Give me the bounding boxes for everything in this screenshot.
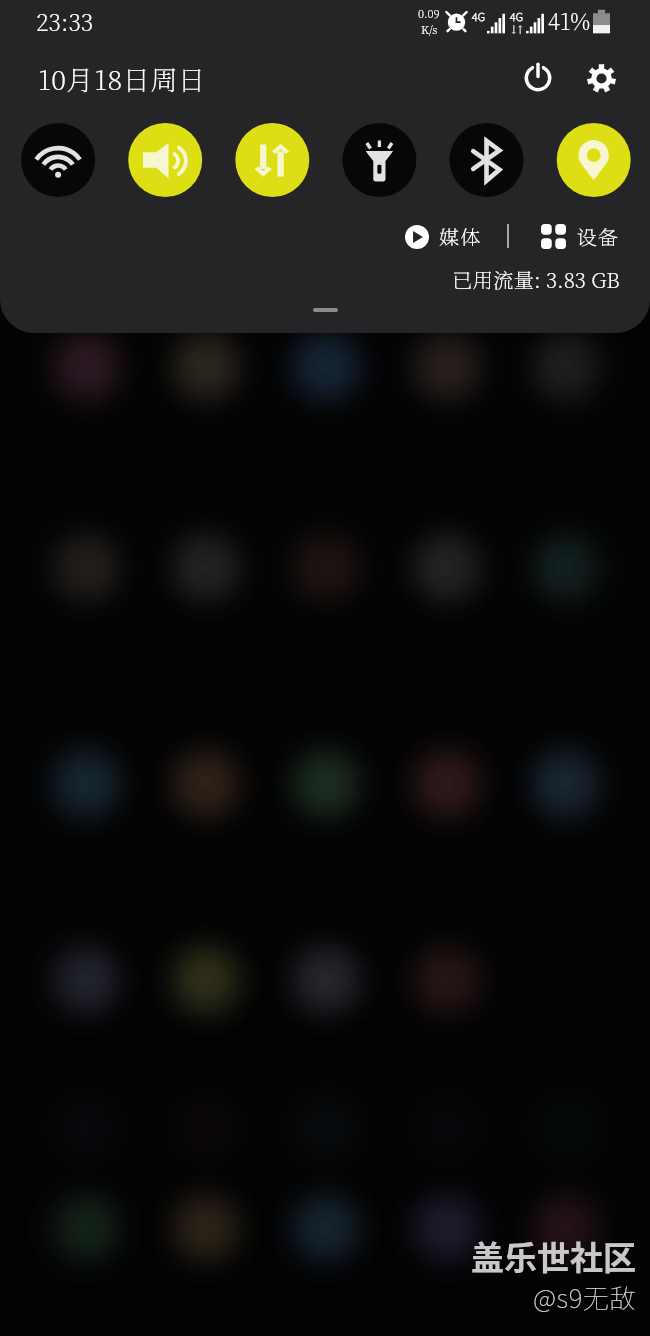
staticText: 10月18日周日	[38, 59, 206, 98]
staticText: 4G	[472, 8, 486, 24]
staticText: 41%	[548, 5, 591, 37]
button[interactable]: 设备	[541, 218, 619, 255]
staticText: 设备	[577, 222, 619, 251]
staticText: 0.09	[418, 5, 440, 21]
button[interactable]: Bluetooth	[428, 114, 535, 206]
staticText: 媒体	[439, 222, 481, 251]
button[interactable]: Flashlight	[321, 114, 428, 206]
staticText: K/s	[421, 21, 438, 37]
staticText: 已用流量: 3.83 GB	[452, 264, 620, 293]
button[interactable]: Location	[535, 114, 642, 206]
staticText: 盖乐世社区	[471, 1232, 636, 1280]
button[interactable]: Settings	[577, 54, 625, 102]
button[interactable]: Power	[514, 54, 562, 102]
staticText: 23:33	[36, 5, 94, 38]
button[interactable]: Wi-Fi	[0, 114, 107, 206]
button[interactable]: Sound	[107, 114, 214, 206]
staticText: @s9无敌	[533, 1278, 637, 1316]
staticText: 4G	[510, 8, 524, 24]
button[interactable]: Mobile data	[214, 114, 321, 206]
button[interactable]: 媒体	[405, 218, 481, 255]
